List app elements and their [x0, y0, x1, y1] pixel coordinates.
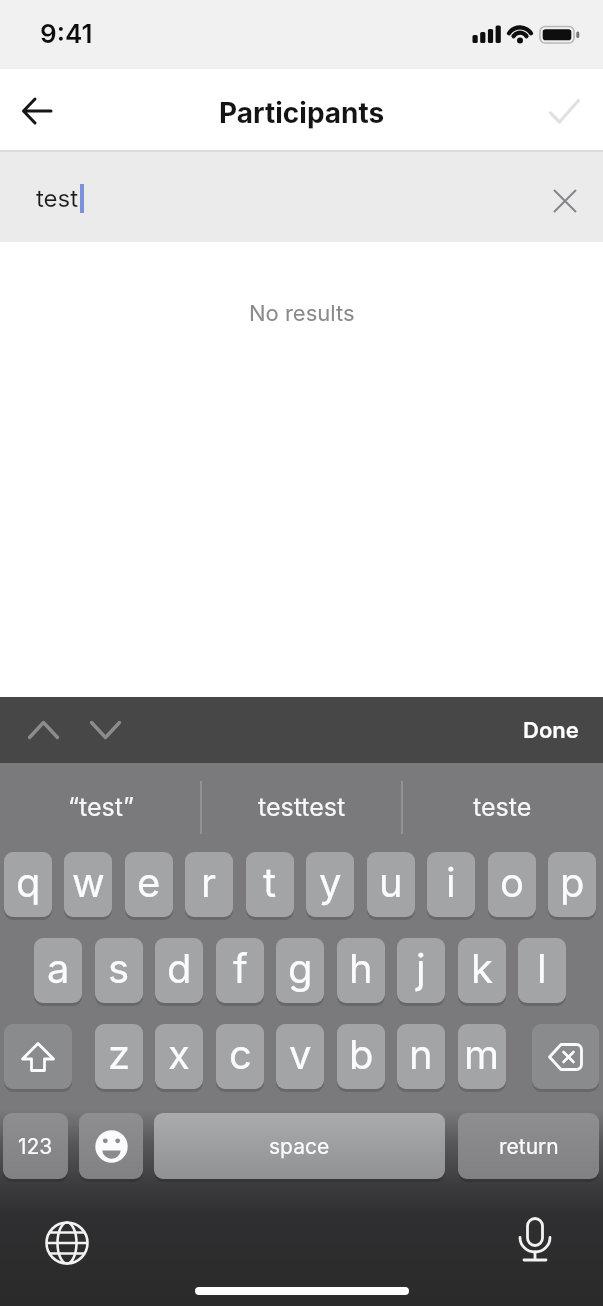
staticText: z: [108, 1030, 131, 1078]
button[interactable]: j: [397, 938, 445, 1003]
button[interactable]: v: [276, 1024, 324, 1089]
button[interactable]: d: [155, 938, 203, 1003]
staticText: space: [269, 1134, 330, 1159]
staticText: k: [471, 944, 493, 992]
staticText: h: [349, 944, 373, 992]
staticText: w: [72, 858, 105, 906]
staticText: Done: [523, 717, 579, 744]
staticText: c: [229, 1030, 252, 1078]
button[interactable]: [11, 90, 63, 132]
button[interactable]: return: [458, 1113, 599, 1179]
button[interactable]: testtest: [201, 763, 402, 851]
button[interactable]: y: [306, 852, 354, 917]
staticText: t: [263, 858, 277, 906]
button[interactable]: i: [427, 852, 475, 917]
staticText: test: [36, 184, 79, 213]
staticText: o: [500, 858, 524, 906]
staticText: 123: [18, 1134, 53, 1159]
staticText: v: [289, 1030, 312, 1078]
staticText: i: [446, 858, 456, 906]
button[interactable]: “test”: [0, 763, 201, 851]
staticText: u: [379, 858, 403, 906]
button[interactable]: o: [488, 852, 536, 917]
button[interactable]: r: [185, 852, 233, 917]
button[interactable]: z: [95, 1024, 143, 1089]
button[interactable]: q: [4, 852, 52, 917]
staticText: 9:41: [40, 18, 93, 49]
staticText: No results: [249, 300, 355, 327]
button[interactable]: space: [154, 1113, 445, 1179]
staticText: f: [233, 944, 248, 992]
button[interactable]: h: [337, 938, 385, 1003]
staticText: d: [167, 944, 192, 992]
button[interactable]: k: [458, 938, 506, 1003]
staticText: e: [137, 858, 161, 906]
staticText: testtest: [258, 792, 346, 822]
button[interactable]: [80, 705, 131, 755]
button[interactable]: b: [337, 1024, 385, 1089]
button[interactable]: teste: [402, 763, 603, 851]
button[interactable]: m: [458, 1024, 506, 1089]
staticText: b: [349, 1030, 374, 1078]
button[interactable]: e: [125, 852, 173, 917]
button[interactable]: [37, 1213, 97, 1273]
button[interactable]: [532, 1024, 599, 1089]
staticText: r: [201, 858, 217, 906]
staticText: Participants: [219, 96, 385, 130]
staticText: return: [499, 1134, 559, 1159]
staticText: q: [16, 858, 41, 906]
button[interactable]: t: [246, 852, 294, 917]
button[interactable]: a: [34, 938, 82, 1003]
button[interactable]: 123: [3, 1113, 68, 1179]
staticText: l: [537, 944, 547, 992]
staticText: a: [47, 944, 70, 992]
button[interactable]: w: [64, 852, 112, 917]
staticText: n: [409, 1030, 433, 1078]
button[interactable]: s: [95, 938, 143, 1003]
button[interactable]: x: [155, 1024, 203, 1089]
button[interactable]: [79, 1113, 143, 1179]
button[interactable]: l: [518, 938, 566, 1003]
staticText: “test”: [68, 792, 134, 822]
button[interactable]: n: [397, 1024, 445, 1089]
button[interactable]: [4, 1024, 72, 1089]
staticText: y: [319, 858, 342, 906]
button[interactable]: f: [216, 938, 264, 1003]
button[interactable]: g: [276, 938, 324, 1003]
button[interactable]: Done: [523, 717, 579, 744]
staticText: g: [288, 944, 313, 992]
staticText: teste: [473, 792, 532, 822]
button[interactable]: [536, 90, 592, 132]
staticText: p: [560, 858, 585, 906]
staticText: m: [464, 1030, 500, 1078]
button[interactable]: [18, 705, 69, 755]
staticText: s: [108, 944, 130, 992]
button[interactable]: p: [548, 852, 596, 917]
staticText: j: [416, 944, 426, 992]
button[interactable]: [548, 184, 582, 218]
staticText: x: [168, 1030, 190, 1078]
button[interactable]: c: [216, 1024, 264, 1089]
button[interactable]: [505, 1211, 565, 1271]
button[interactable]: u: [367, 852, 415, 917]
